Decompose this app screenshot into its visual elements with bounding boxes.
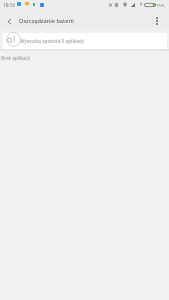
staticText: 15% — [156, 2, 165, 8]
staticText: 19:16 — [3, 2, 15, 8]
staticText: Wyszukaj spośród 0 aplikacji — [20, 38, 84, 45]
button[interactable]: Wyszukaj spośród 0 aplikacji — [3, 33, 167, 49]
button[interactable]: Search — [6, 32, 21, 47]
button[interactable]: More options — [148, 11, 166, 31]
staticText: Oszczędzanie baterii — [19, 17, 74, 25]
staticText: Brak aplikacji — [1, 55, 30, 61]
button[interactable]: Back — [0, 11, 19, 31]
